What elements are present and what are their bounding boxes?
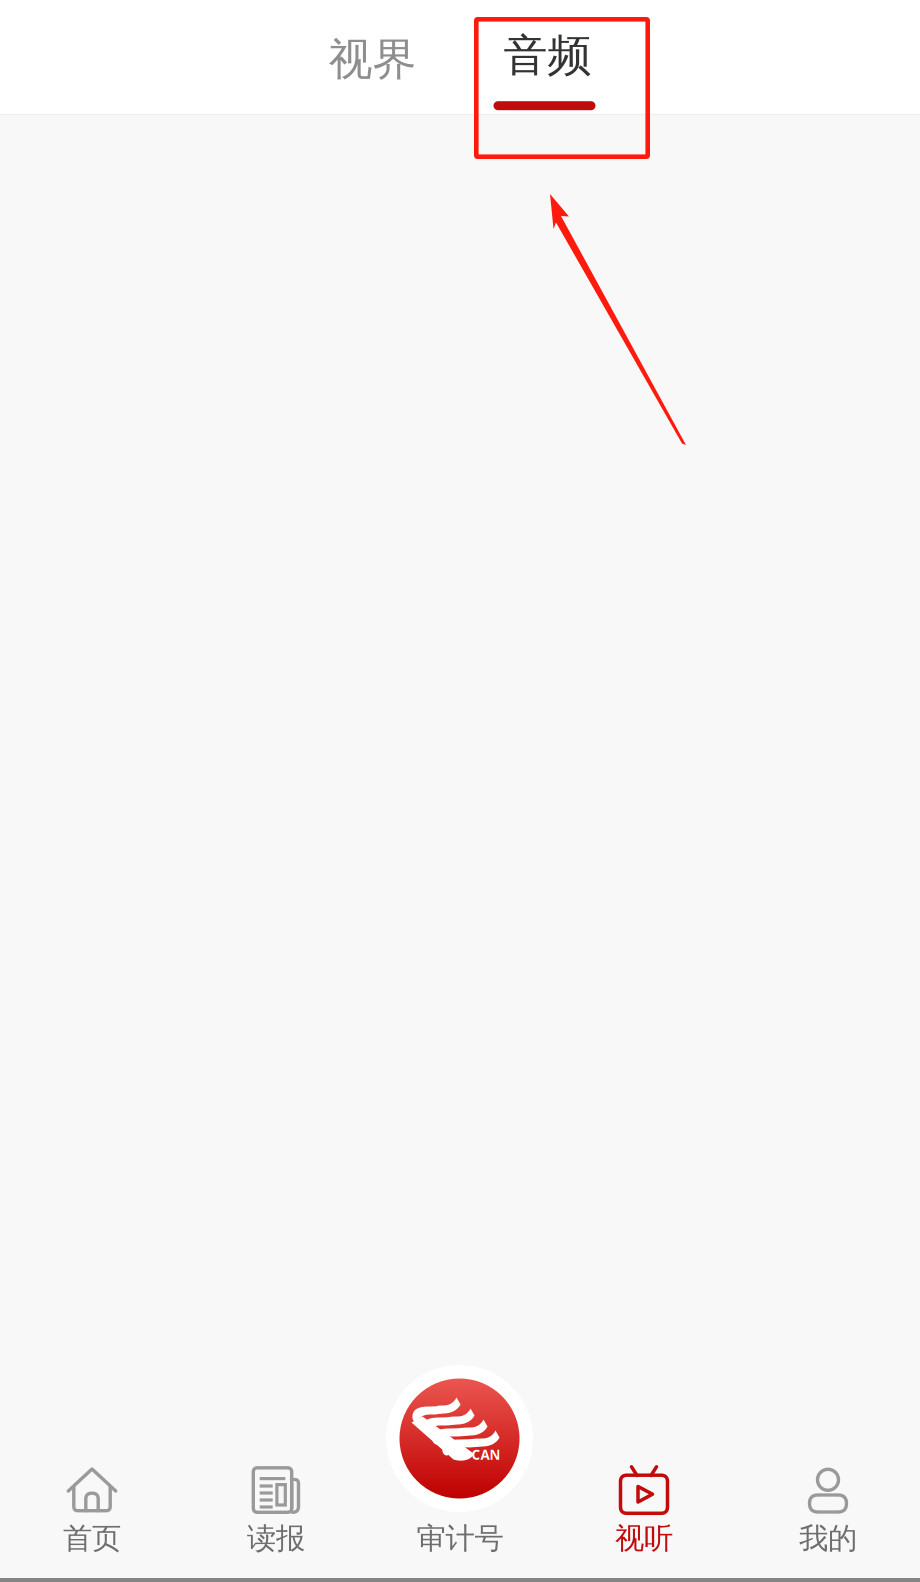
staticText: 首页: [63, 1520, 121, 1557]
button[interactable]: 首页: [0, 1449, 184, 1582]
staticText: 视听: [615, 1520, 673, 1557]
button[interactable]: 审计号: [386, 1365, 533, 1512]
button[interactable]: 审计号: [368, 1449, 552, 1582]
button[interactable]: 我的: [736, 1449, 920, 1582]
button[interactable]: 视界: [285, 0, 460, 114]
button[interactable]: 视听: [552, 1449, 736, 1582]
staticText: 视界: [328, 32, 416, 87]
button[interactable]: 音频: [460, 0, 635, 114]
staticText: CAN: [471, 1445, 500, 1464]
button[interactable]: 读报: [184, 1449, 368, 1582]
staticText: 音频: [503, 28, 591, 83]
staticText: 我的: [799, 1520, 857, 1557]
staticText: 读报: [247, 1520, 305, 1557]
staticText: 审计号: [416, 1520, 503, 1557]
